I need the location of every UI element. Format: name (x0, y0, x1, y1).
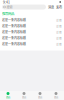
staticText: 首页 (54, 95, 58, 99)
staticText: 详情 (56, 42, 62, 46)
staticText: 发布 (56, 5, 62, 9)
staticText: 详情 (56, 18, 62, 22)
staticText: 搜索 (6, 5, 12, 9)
staticText: 这是一条内容标题 (2, 18, 26, 22)
staticText: 推荐商品 (2, 11, 14, 16)
staticText: 这是一条内容标题 (2, 24, 26, 28)
staticText: 这是一条内容标题 (2, 42, 26, 46)
staticText: 这是一条内容标题 (2, 36, 26, 40)
button[interactable]: 首页 (32, 91, 48, 100)
button[interactable]: 首页 (16, 91, 32, 100)
staticText: 详情 (56, 30, 62, 34)
button[interactable]: 发布 (56, 4, 62, 9)
staticText: 首页 (38, 95, 42, 99)
button[interactable]: 首页 (0, 91, 16, 100)
button[interactable]: 消息 (48, 4, 54, 9)
staticText: 消息 (48, 5, 54, 9)
button[interactable]: 首页 (48, 91, 64, 100)
staticText: 9:41 (3, 0, 10, 4)
staticText: 这是一条内容标题 (2, 30, 26, 34)
staticText: 首页 (22, 95, 26, 99)
staticText: 首页 (6, 95, 10, 99)
button[interactable]: 搜索 (2, 4, 46, 9)
staticText: 详情 (56, 24, 62, 28)
staticText: 详情 (56, 36, 62, 40)
